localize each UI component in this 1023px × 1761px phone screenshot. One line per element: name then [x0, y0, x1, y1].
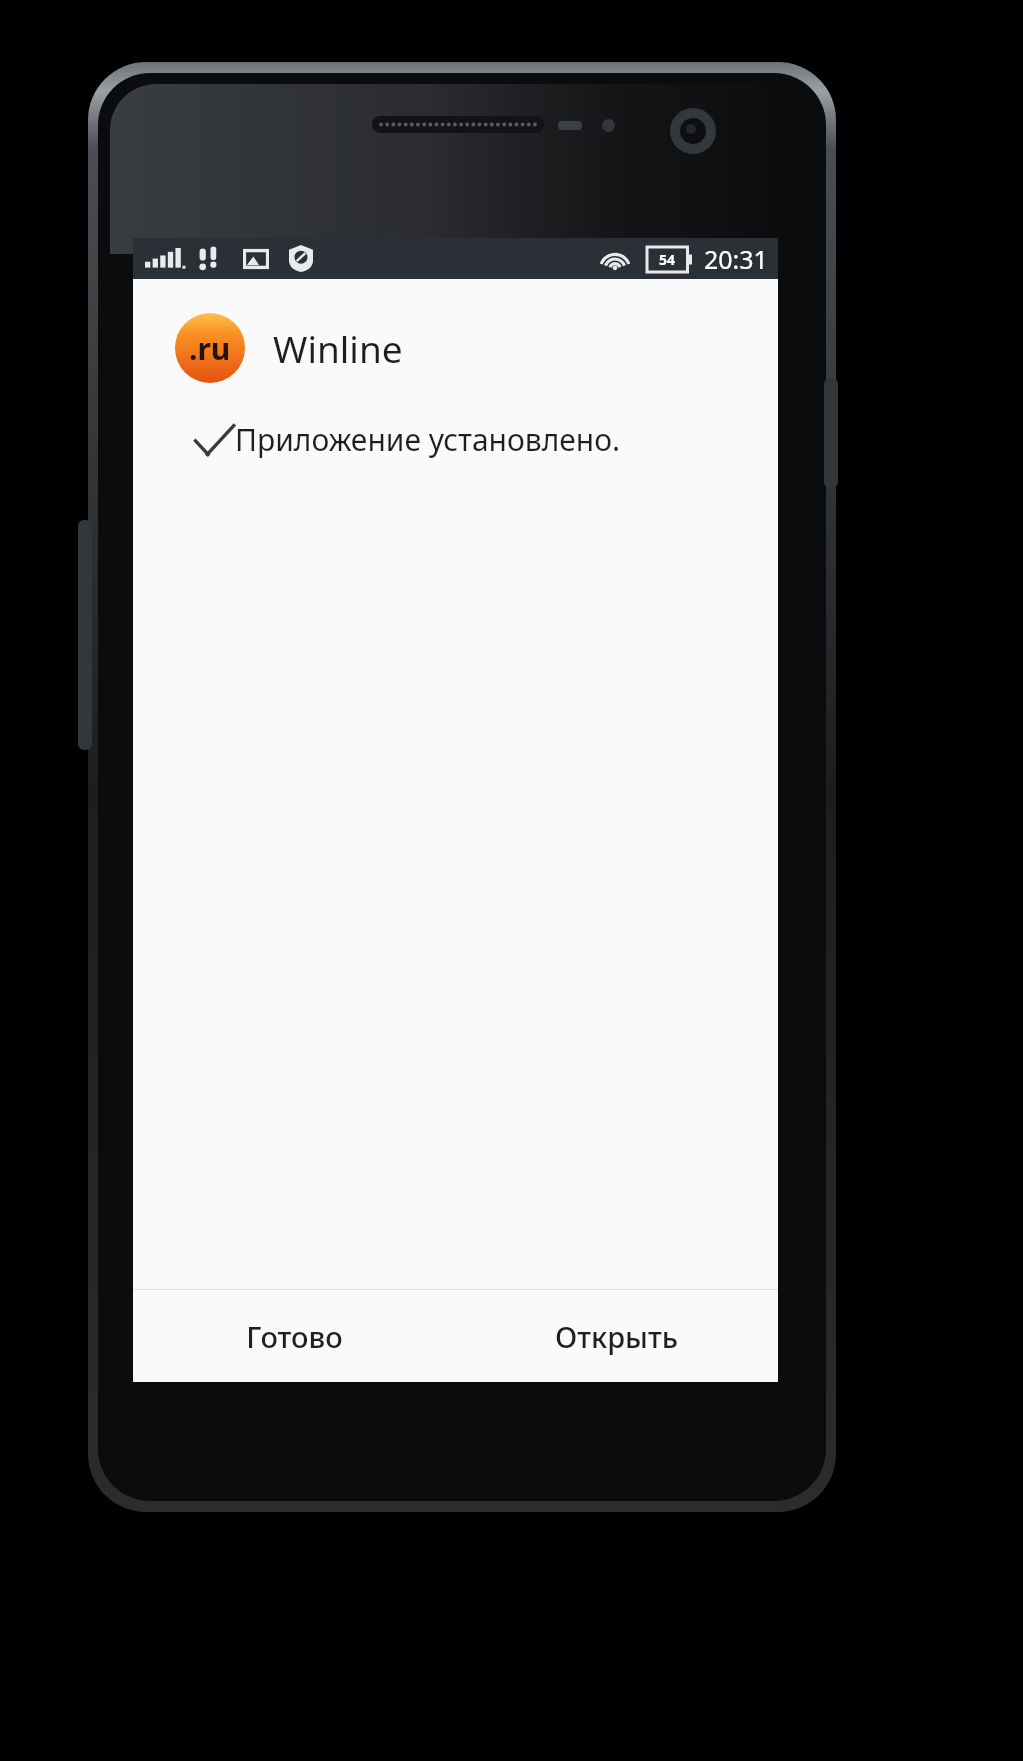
staticText: 54	[659, 250, 676, 269]
staticText: Приложение установлено.	[235, 419, 621, 460]
button[interactable]: Готово	[133, 1290, 455, 1382]
staticText: Winline	[273, 323, 403, 373]
staticText: Готово	[246, 1317, 343, 1356]
staticText: Открыть	[555, 1317, 678, 1356]
button[interactable]: Открыть	[455, 1290, 778, 1382]
staticText: .ru	[189, 328, 231, 369]
staticText: 20:31	[704, 242, 768, 276]
